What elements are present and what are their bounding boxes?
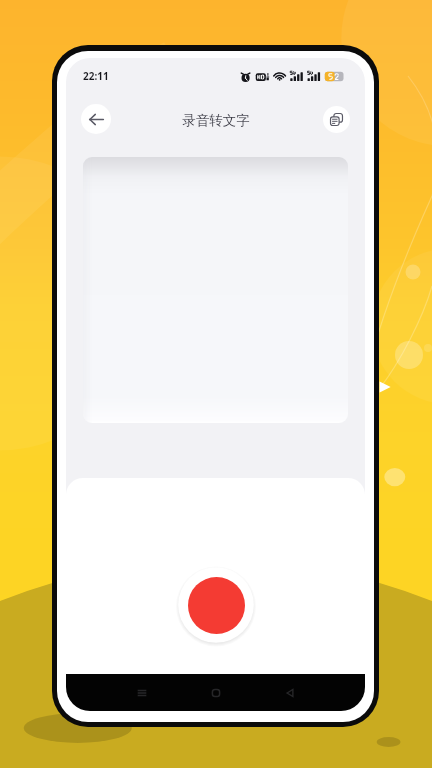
- button[interactable]: Home: [179, 674, 253, 711]
- staticText: 22:11: [83, 69, 109, 83]
- button[interactable]: Start recording: [176, 565, 256, 645]
- staticText: 录音转文字: [182, 112, 250, 129]
- button[interactable]: Back: [78, 101, 114, 137]
- button[interactable]: Back: [253, 674, 327, 711]
- button[interactable]: My records: [323, 106, 350, 133]
- button[interactable]: Recent apps: [104, 674, 179, 711]
